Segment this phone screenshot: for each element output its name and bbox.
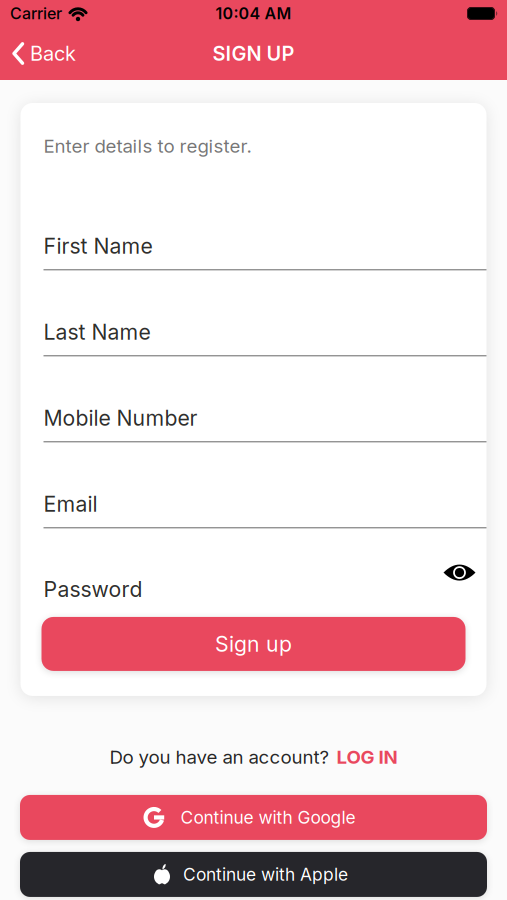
staticText: Carrier bbox=[10, 4, 62, 23]
staticText: Last Name bbox=[43, 319, 150, 345]
staticText: Mobile Number bbox=[43, 405, 197, 431]
staticText: Back bbox=[30, 42, 76, 65]
staticText: Email bbox=[43, 491, 97, 517]
staticText: Do you have an account? bbox=[109, 746, 329, 768]
textField[interactable]: Last Name bbox=[43, 319, 261, 345]
staticText: Continue with Google bbox=[180, 807, 355, 828]
staticText: Sign up bbox=[215, 631, 292, 656]
textField[interactable]: First Name bbox=[43, 233, 261, 259]
button[interactable]: Back bbox=[0, 27, 86, 80]
button[interactable]: Show password bbox=[443, 562, 475, 583]
staticText: Password bbox=[43, 577, 142, 602]
button[interactable]: Continue with Apple bbox=[20, 852, 487, 897]
staticText: Continue with Apple bbox=[183, 864, 348, 885]
staticText: SIGN UP bbox=[212, 42, 294, 65]
textField[interactable]: Password bbox=[43, 577, 243, 602]
textField[interactable]: Mobile Number bbox=[43, 405, 261, 431]
button[interactable]: Continue with Google bbox=[20, 795, 487, 840]
button[interactable]: LOG IN bbox=[336, 746, 397, 768]
textField[interactable]: Email bbox=[43, 491, 261, 517]
staticText: LOG IN bbox=[336, 746, 397, 768]
staticText: First Name bbox=[43, 233, 152, 259]
staticText: 10:04 AM bbox=[215, 4, 291, 23]
staticText: Enter details to register. bbox=[43, 135, 251, 157]
button[interactable]: Sign up bbox=[41, 617, 465, 671]
